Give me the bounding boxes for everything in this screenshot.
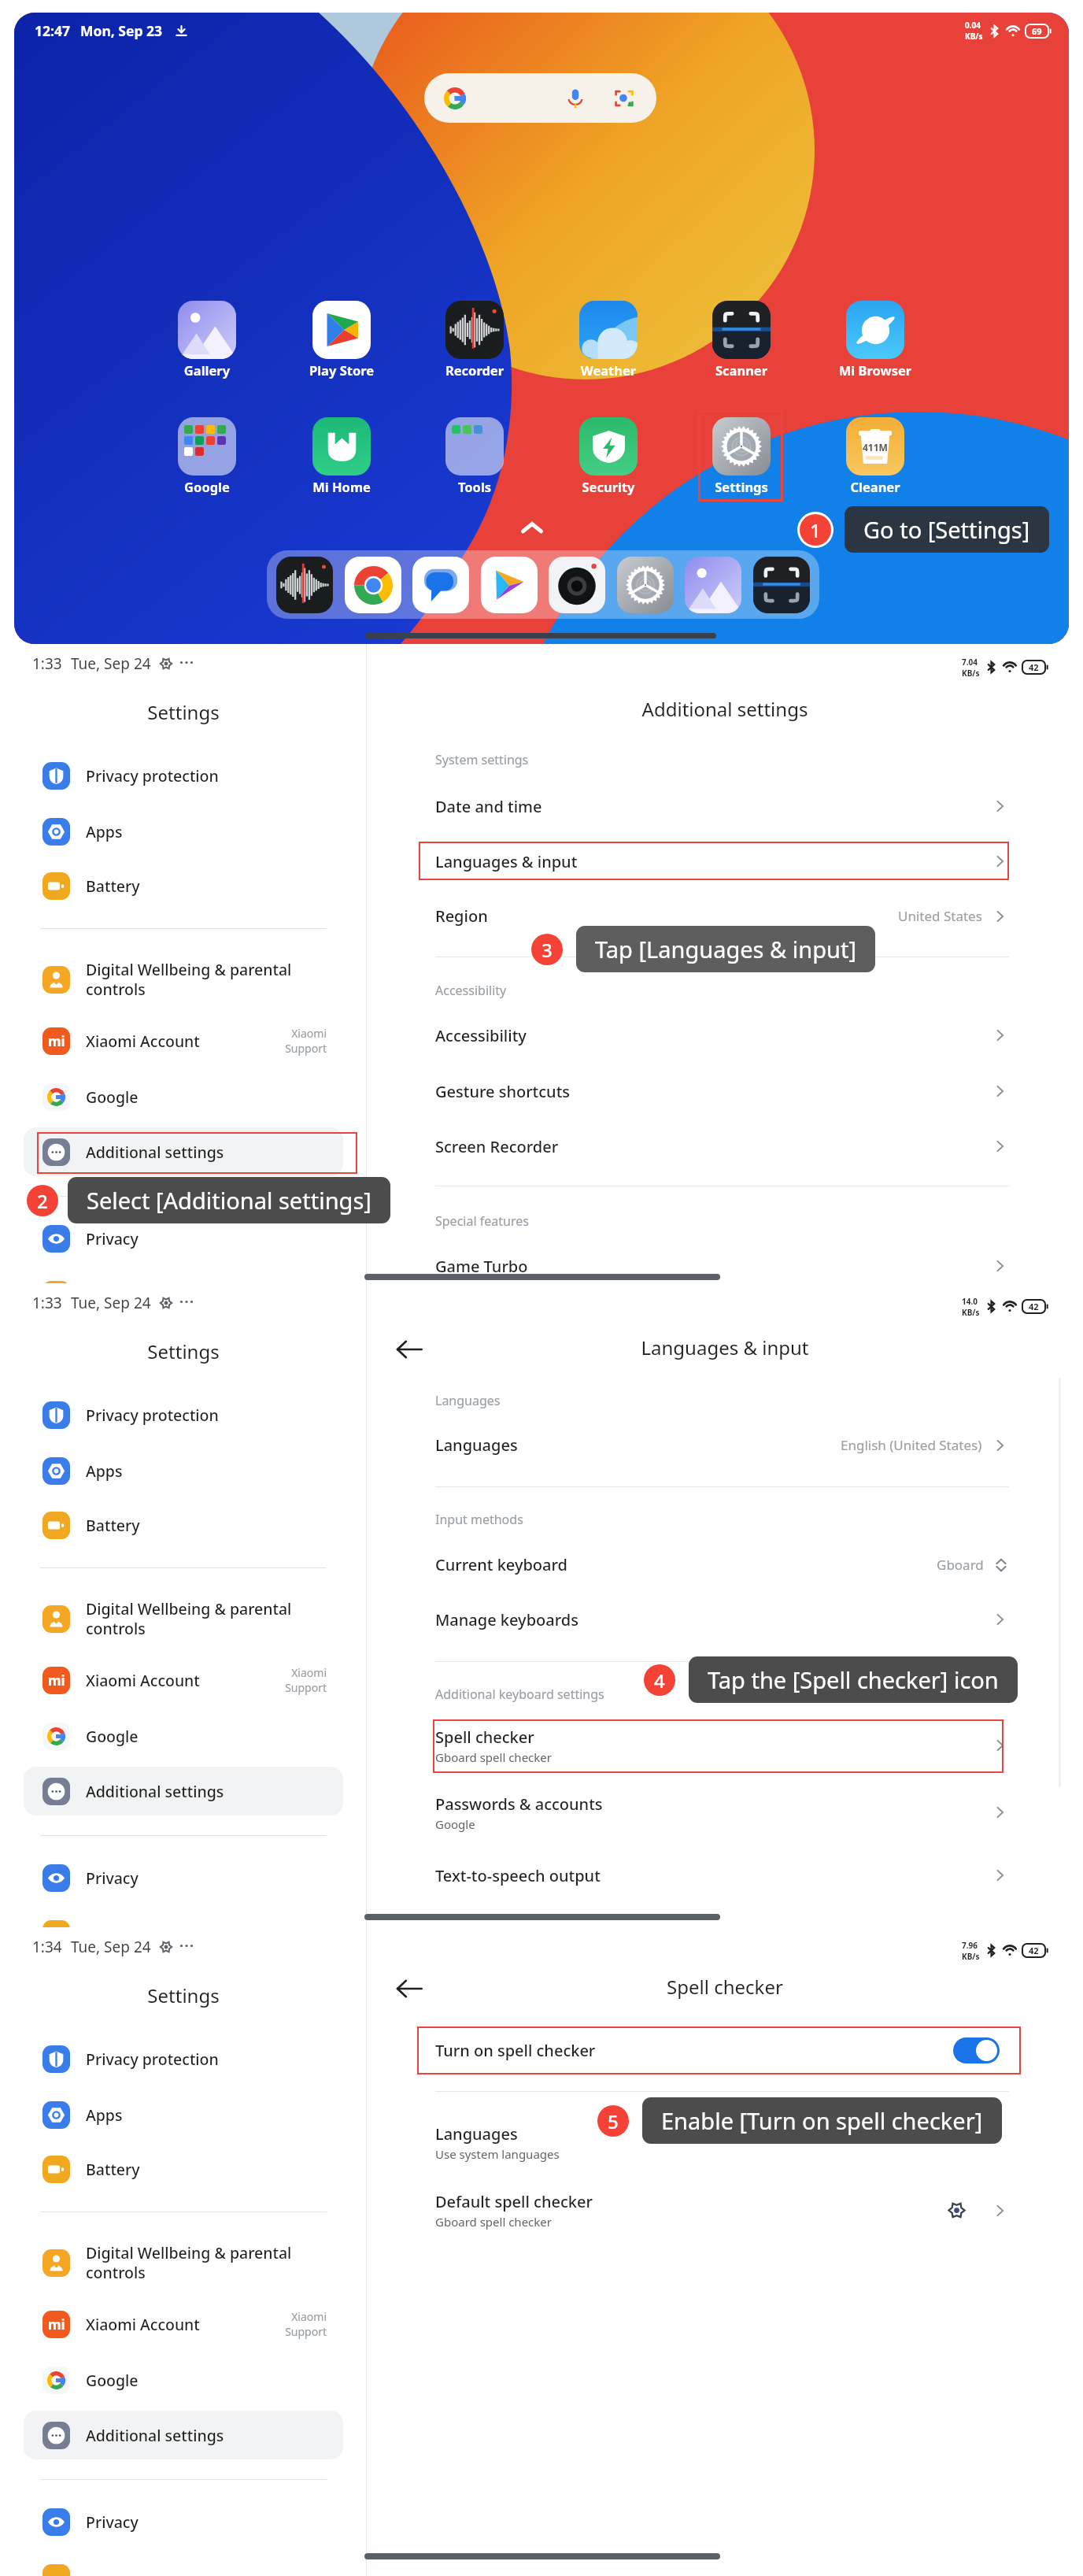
staticText: Default spell checker — [435, 2191, 593, 2212]
button[interactable]: Date and time — [367, 784, 1083, 828]
button[interactable]: Battery — [24, 861, 343, 910]
staticText: Xiaomi Support — [285, 1665, 327, 1695]
button[interactable]: Recorder — [429, 301, 520, 379]
button[interactable]: Gallery — [682, 554, 744, 616]
button[interactable]: Digital Wellbeing & parental controls — [24, 955, 343, 1004]
button[interactable]: Privacy — [24, 1214, 343, 1263]
button[interactable]: Additional settings — [24, 1127, 343, 1176]
staticText: Digital Wellbeing & parental controls — [86, 959, 327, 1000]
staticText: KB/s — [962, 1951, 980, 1960]
staticText: Spell checker — [435, 1727, 534, 1748]
staticText: 7.96 — [962, 1940, 978, 1951]
button[interactable]: Default spell checker — [367, 2185, 1083, 2235]
staticText: Settings — [0, 1982, 367, 2008]
button[interactable]: Screen Recorder — [367, 1124, 1083, 1168]
button[interactable]: Mi Home — [296, 417, 387, 495]
button[interactable]: Languages & input — [367, 839, 1083, 883]
button[interactable]: Messages — [410, 554, 471, 616]
staticText: Privacy — [86, 2511, 327, 2533]
button[interactable]: Additional settings — [24, 1767, 343, 1815]
button[interactable]: Privacy — [24, 1853, 343, 1902]
button[interactable]: Settings — [696, 417, 787, 495]
staticText: Additional settings — [86, 2425, 327, 2446]
staticText: KB/s — [962, 1307, 980, 1316]
button[interactable]: Google — [24, 1072, 343, 1121]
staticText: 0.04 — [965, 20, 981, 31]
staticText: Xiaomi Account — [86, 1031, 285, 1052]
button[interactable]: Gallery — [161, 301, 253, 379]
staticText: Languages & input — [367, 1334, 1083, 1360]
button[interactable]: Privacy protection — [24, 1390, 343, 1439]
button[interactable] — [24, 1270, 343, 1319]
button[interactable]: Text-to-speech output — [367, 1853, 1083, 1897]
button[interactable]: Mi Browser — [830, 301, 921, 379]
staticText: Additional keyboard settings — [435, 1686, 604, 1703]
staticText: Privacy — [86, 1228, 327, 1249]
button[interactable]: Google — [161, 417, 253, 495]
button[interactable]: Tools — [429, 417, 520, 495]
button[interactable]: mi — [24, 2300, 343, 2348]
button[interactable]: Turn on spell checker — [367, 2028, 1083, 2072]
button[interactable]: Privacy — [24, 2497, 343, 2546]
button[interactable]: Digital Wellbeing & parental controls — [24, 1594, 343, 1643]
staticText: Tue, Sep 24 — [71, 1293, 151, 1313]
staticText — [86, 1284, 327, 1305]
button[interactable]: Manage keyboards — [367, 1597, 1083, 1641]
staticText: Turn on spell checker — [435, 2040, 596, 2061]
button[interactable]: Game Turbo — [367, 1244, 1083, 1288]
button[interactable]: Back — [390, 1970, 428, 2008]
button[interactable] — [24, 1909, 343, 1958]
button[interactable]: Settings — [615, 554, 676, 616]
button[interactable]: Back — [390, 1331, 428, 1368]
staticText: Languages — [435, 2123, 518, 2145]
button[interactable]: Recorder — [274, 554, 335, 616]
button[interactable]: Current keyboard — [367, 1542, 1083, 1586]
button[interactable]: Spell checker — [367, 1720, 1083, 1771]
button[interactable]: Additional settings — [24, 2411, 343, 2459]
button[interactable]: Gesture shortcuts — [367, 1069, 1083, 1113]
staticText: 12:47 — [35, 21, 70, 40]
staticText: 7.04 — [962, 657, 978, 668]
button[interactable]: Scanner — [751, 554, 812, 616]
button[interactable]: Languages — [367, 2117, 1083, 2167]
button[interactable] — [424, 73, 656, 123]
button[interactable]: Play Store — [296, 301, 387, 379]
button[interactable]: Apps — [24, 2090, 343, 2139]
button[interactable]: Privacy protection — [24, 2034, 343, 2083]
button[interactable]: mi — [24, 1656, 343, 1704]
button[interactable]: Chrome — [342, 554, 404, 616]
staticText: Enable [Turn on spell checker] — [661, 2105, 983, 2136]
button[interactable]: Apps — [24, 1446, 343, 1495]
button[interactable]: Security — [563, 417, 654, 495]
button[interactable]: Privacy protection — [24, 751, 343, 800]
staticText: Accessibility — [435, 982, 507, 999]
button[interactable]: mi — [24, 1016, 343, 1065]
button[interactable]: Weather — [563, 301, 654, 379]
button[interactable]: Passwords & accounts — [367, 1787, 1083, 1838]
staticText: Security — [563, 478, 654, 495]
button[interactable]: Battery — [24, 2145, 343, 2193]
button[interactable]: Accessibility — [367, 1013, 1083, 1057]
staticText: 1 — [810, 517, 821, 543]
staticText: 1:33 — [32, 653, 62, 674]
button[interactable]: Battery — [24, 1501, 343, 1549]
button[interactable]: Languages — [367, 1423, 1083, 1467]
button[interactable] — [24, 2553, 343, 2576]
button[interactable]: Scanner — [696, 301, 787, 379]
button[interactable]: Mi Video — [479, 554, 540, 616]
staticText: 42 — [1029, 1301, 1039, 1312]
button[interactable]: 411M — [830, 417, 921, 495]
staticText: Additional settings — [86, 1781, 327, 1802]
staticText: mi — [48, 2315, 65, 2334]
button[interactable]: Digital Wellbeing & parental controls — [24, 2238, 343, 2287]
button[interactable]: Google — [24, 1712, 343, 1760]
button[interactable]: Apps — [24, 807, 343, 856]
staticText: Gboard spell checker — [435, 2214, 552, 2230]
staticText: Privacy protection — [86, 2049, 327, 2070]
button[interactable]: Region — [367, 894, 1083, 938]
button[interactable]: Google — [24, 2356, 343, 2404]
staticText: Battery — [86, 1515, 327, 1536]
button[interactable]: Camera — [546, 554, 608, 616]
staticText: Gesture shortcuts — [435, 1081, 571, 1102]
staticText: Digital Wellbeing & parental controls — [86, 2242, 327, 2283]
